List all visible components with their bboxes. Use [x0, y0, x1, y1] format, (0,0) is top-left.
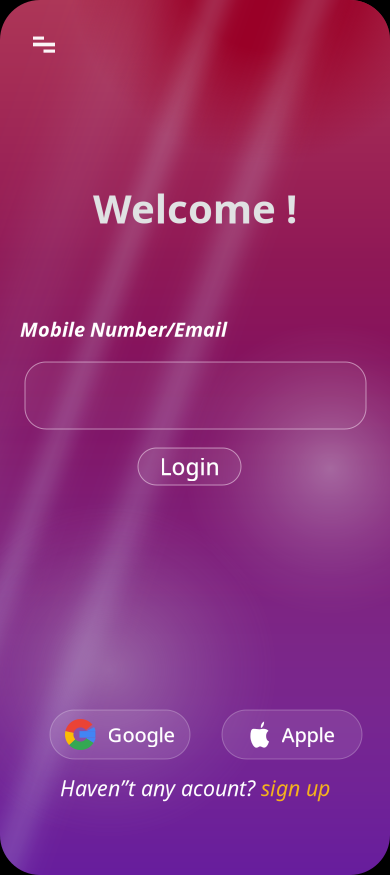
staticText: Apple — [281, 721, 334, 748]
button[interactable]: Haven”t any acount? — [0, 775, 390, 801]
staticText: Login — [159, 451, 219, 481]
staticText: Haven”t any acount? — [60, 774, 261, 802]
button[interactable]: Login — [138, 448, 241, 485]
button[interactable]: Menu — [22, 23, 66, 67]
staticText: Welcome ! — [93, 181, 297, 234]
staticText: sign up — [261, 774, 330, 802]
button[interactable]: Apple — [222, 710, 362, 759]
staticText: Mobile Number/Email — [20, 316, 227, 342]
staticText: Google — [107, 721, 174, 748]
button[interactable]: Google — [50, 710, 190, 759]
